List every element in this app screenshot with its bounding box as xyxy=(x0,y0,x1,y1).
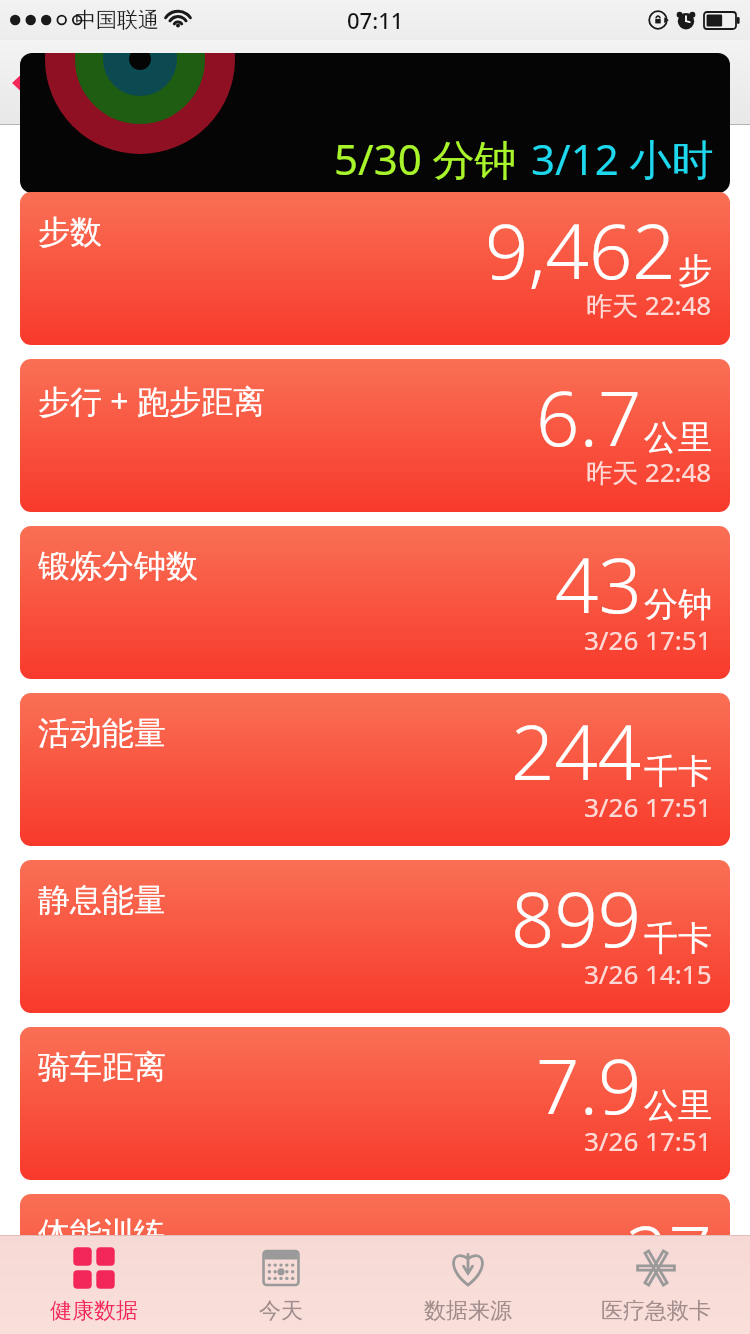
staticText: 锻炼分钟数 xyxy=(38,546,198,586)
staticText: 244 xyxy=(511,699,642,803)
staticText: 千卡 xyxy=(644,917,712,960)
staticText: 3/12 小时 xyxy=(531,130,714,187)
staticText: 中国联通 xyxy=(75,7,159,33)
staticText: 6.7 xyxy=(536,365,642,469)
staticText: 899 xyxy=(511,866,642,970)
button[interactable]: 步数 xyxy=(20,192,730,345)
staticText: 分钟 xyxy=(644,583,712,626)
button[interactable]: 骑车距离 xyxy=(20,1027,730,1180)
staticText: 健康数据 xyxy=(50,1297,138,1325)
staticText: 静息能量 xyxy=(38,880,166,920)
staticText: 9,462 xyxy=(485,198,676,302)
staticText: 步数 xyxy=(38,212,102,252)
staticText: 医疗急救卡 xyxy=(601,1297,711,1325)
staticText: 昨天 22:48 xyxy=(586,454,712,490)
staticText: 体能训练 xyxy=(38,1214,166,1254)
staticText: 5/30 分钟 xyxy=(334,130,517,187)
button[interactable]: 健康数据 xyxy=(0,1235,187,1334)
staticText: 公里 xyxy=(644,416,712,459)
staticText: 07:11 xyxy=(347,5,404,35)
button[interactable]: 步行 + 跑步距离 xyxy=(20,359,730,512)
staticText: 43 xyxy=(555,532,642,636)
button[interactable]: 活动能量 xyxy=(20,693,730,846)
staticText: 数据来源 xyxy=(424,1297,512,1325)
staticText: 27 xyxy=(625,1200,712,1304)
button[interactable]: 健康数据 xyxy=(0,56,179,110)
staticText: 3/26 14:15 xyxy=(584,956,712,991)
button[interactable]: 医疗急救卡 xyxy=(562,1235,750,1334)
button[interactable]: 5/30 分钟 xyxy=(20,53,730,193)
staticText: 3/26 17:51 xyxy=(584,622,712,657)
staticText: 3/26 17:51 xyxy=(584,789,712,824)
staticText: 今天 xyxy=(259,1297,303,1325)
staticText: 千卡 xyxy=(644,750,712,793)
button[interactable]: 数据来源 xyxy=(374,1235,562,1334)
staticText: 公里 xyxy=(644,1084,712,1127)
button[interactable]: 锻炼分钟数 xyxy=(20,526,730,679)
staticText: 7.9 xyxy=(536,1033,642,1137)
button[interactable]: 体能训练 xyxy=(20,1194,730,1334)
staticText: 健康数据 xyxy=(45,64,165,102)
staticText: 3/26 17:51 xyxy=(584,1123,712,1158)
staticText: 步 xyxy=(678,249,712,292)
button[interactable]: 今天 xyxy=(187,1235,374,1334)
staticText: 昨天 22:48 xyxy=(586,287,712,323)
staticText: 骑车距离 xyxy=(38,1047,166,1087)
staticText: 步行 + 跑步距离 xyxy=(38,379,265,423)
staticText: 活动能量 xyxy=(38,713,166,753)
button[interactable]: 静息能量 xyxy=(20,860,730,1013)
